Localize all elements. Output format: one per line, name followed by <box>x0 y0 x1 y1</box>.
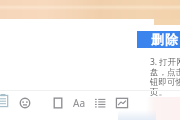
button[interactable]: List <box>91 94 109 112</box>
button[interactable]: Font size <box>70 94 88 112</box>
button[interactable]: Emoji <box>16 94 34 112</box>
button[interactable]: Insert image <box>113 94 131 112</box>
button[interactable]: 删除网页 <box>137 31 180 48</box>
staticText: Aa <box>73 96 85 110</box>
staticText: 3. 打开网盘，点击按钮即可恢复页。 <box>150 56 180 98</box>
button[interactable]: Paste <box>0 92 12 110</box>
button[interactable]: Shape <box>49 94 67 112</box>
staticText: 删除网页 <box>151 32 180 48</box>
